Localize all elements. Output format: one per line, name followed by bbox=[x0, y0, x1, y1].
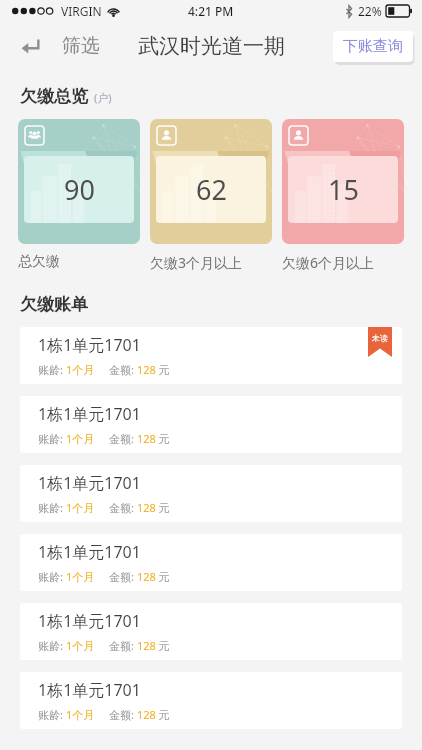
staticText: 1栋1单元1701 bbox=[38, 679, 141, 701]
staticText: 金额: bbox=[109, 431, 137, 446]
staticText: 1个月 bbox=[66, 500, 95, 515]
button[interactable]: 15 bbox=[282, 119, 404, 244]
staticText: (户) bbox=[94, 90, 112, 105]
staticText: 1个月 bbox=[66, 569, 95, 584]
staticText: 总欠缴 bbox=[18, 253, 60, 271]
staticText: 金额: bbox=[109, 638, 137, 653]
staticText: 15 bbox=[328, 171, 359, 208]
staticText: 元 bbox=[156, 707, 170, 722]
staticText: 账龄: bbox=[38, 638, 66, 653]
staticText: 元 bbox=[156, 638, 170, 653]
button[interactable]: 1栋1单元1701 bbox=[20, 672, 402, 729]
staticText: 欠缴总览 bbox=[20, 86, 88, 107]
staticText: 账龄: bbox=[38, 707, 66, 722]
staticText: 元 bbox=[156, 569, 170, 584]
staticText: 金额: bbox=[109, 362, 137, 377]
staticText: 128 bbox=[137, 569, 156, 584]
staticText: 1栋1单元1701 bbox=[38, 472, 141, 494]
staticText: 账龄: bbox=[38, 569, 66, 584]
button[interactable]: 1栋1单元1701 bbox=[20, 327, 402, 384]
button[interactable]: 筛选 bbox=[56, 26, 106, 66]
staticText: 未读 bbox=[372, 333, 388, 343]
staticText: 62 bbox=[196, 171, 227, 208]
staticText: 128 bbox=[137, 431, 156, 446]
staticText: 金额: bbox=[109, 569, 137, 584]
button[interactable]: Back bbox=[10, 26, 50, 66]
staticText: 账龄: bbox=[38, 431, 66, 446]
button[interactable]: 1栋1单元1701 bbox=[20, 603, 402, 660]
staticText: 元 bbox=[156, 362, 170, 377]
staticText: 128 bbox=[137, 500, 156, 515]
staticText: 金额: bbox=[109, 500, 137, 515]
staticText: 筛选 bbox=[62, 34, 100, 58]
button[interactable]: 下账查询 bbox=[333, 31, 413, 62]
button[interactable]: 1栋1单元1701 bbox=[20, 396, 402, 453]
staticText: 128 bbox=[137, 707, 156, 722]
staticText: 账龄: bbox=[38, 500, 66, 515]
staticText: 1个月 bbox=[66, 707, 95, 722]
staticText: 1栋1单元1701 bbox=[38, 541, 141, 563]
other: Household bbox=[157, 126, 176, 145]
staticText: 武汉时光道一期 bbox=[138, 33, 285, 59]
button[interactable]: 62 bbox=[150, 119, 272, 244]
staticText: 欠缴3个月以上 bbox=[150, 253, 243, 272]
staticText: 欠缴6个月以上 bbox=[282, 253, 375, 272]
staticText: 金额: bbox=[109, 707, 137, 722]
staticText: 欠缴账单 bbox=[20, 294, 88, 315]
button[interactable]: 90 bbox=[18, 119, 140, 244]
staticText: 元 bbox=[156, 500, 170, 515]
button[interactable]: 1栋1单元1701 bbox=[20, 465, 402, 522]
staticText: 1栋1单元1701 bbox=[38, 610, 141, 632]
other: Household bbox=[289, 126, 308, 145]
staticText: 1栋1单元1701 bbox=[38, 334, 141, 356]
staticText: 1个月 bbox=[66, 431, 95, 446]
staticText: 1个月 bbox=[66, 638, 95, 653]
staticText: 128 bbox=[137, 638, 156, 653]
staticText: 22% bbox=[358, 3, 382, 19]
staticText: 4:21 PM bbox=[188, 3, 234, 19]
staticText: 1栋1单元1701 bbox=[38, 403, 141, 425]
button[interactable]: 1栋1单元1701 bbox=[20, 534, 402, 591]
staticText: 下账查询 bbox=[343, 37, 403, 56]
other: Households bbox=[25, 126, 44, 145]
staticText: 128 bbox=[137, 362, 156, 377]
staticText: 账龄: bbox=[38, 362, 66, 377]
staticText: 90 bbox=[64, 171, 95, 208]
staticText: 1个月 bbox=[66, 362, 95, 377]
staticText: VIRGIN bbox=[61, 3, 102, 19]
staticText: 元 bbox=[156, 431, 170, 446]
